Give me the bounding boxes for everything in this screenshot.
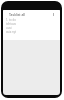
button[interactable]: uusi <box>3 26 60 30</box>
staticText: 1. to do <box>6 18 16 22</box>
staticText: Tasklist all <box>9 12 26 17</box>
button[interactable]: Tasklist all <box>3 10 60 19</box>
staticText: tehtava <box>6 22 16 26</box>
button[interactable]: More options <box>50 11 57 18</box>
staticText: asia nyt <box>6 30 17 34</box>
button[interactable]: asia nyt <box>3 30 60 34</box>
button[interactable]: tehtava <box>3 22 60 26</box>
button[interactable]: 1. to do <box>3 18 60 22</box>
staticText: uusi <box>6 26 12 30</box>
